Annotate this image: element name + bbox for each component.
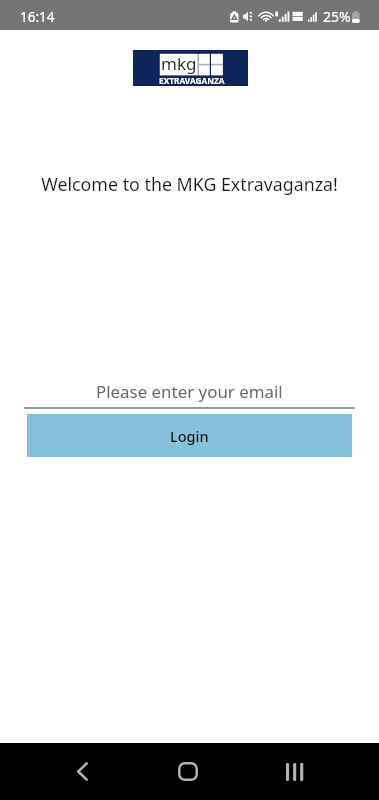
staticText: Login [170,426,209,446]
staticText: 25% [323,7,351,26]
button[interactable]: Please enter your email [24,378,355,404]
staticText: 16:14 [20,8,55,26]
button[interactable]: Back [48,751,116,792]
staticText: Please enter your email [96,380,283,403]
staticText: EXTRAVAGANZA [159,75,225,86]
button[interactable]: Login [27,414,352,457]
staticText: Welcome to the MKG Extravaganza! [0,172,379,196]
button[interactable]: Recent apps [261,751,329,792]
staticText: mkg [161,52,197,75]
button[interactable]: Home [154,751,222,792]
